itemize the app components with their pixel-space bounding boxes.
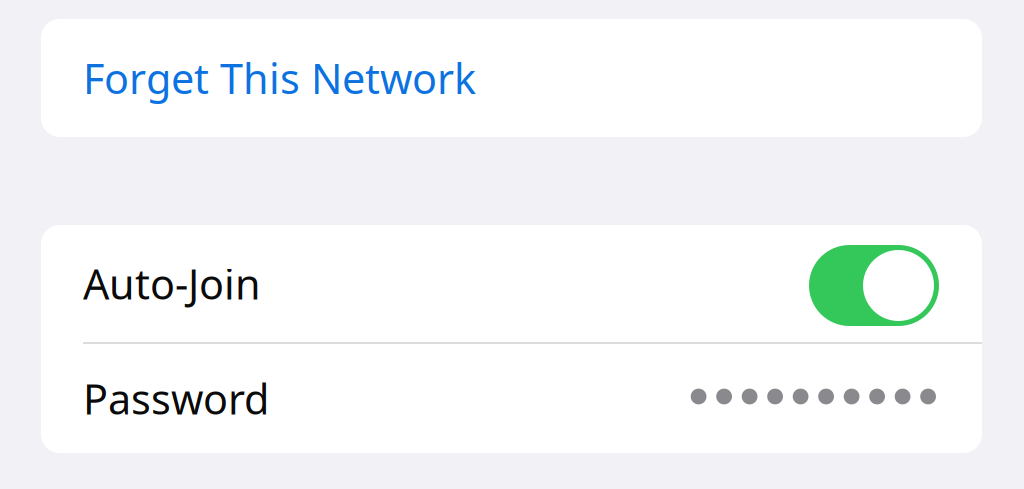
staticText: Auto-Join bbox=[83, 256, 261, 311]
button[interactable]: Password bbox=[41, 344, 982, 453]
button[interactable]: Auto-Join bbox=[41, 225, 982, 342]
button[interactable]: Forget This Network bbox=[41, 19, 982, 137]
staticText: Password bbox=[83, 371, 269, 426]
staticText: Forget This Network bbox=[83, 51, 476, 105]
